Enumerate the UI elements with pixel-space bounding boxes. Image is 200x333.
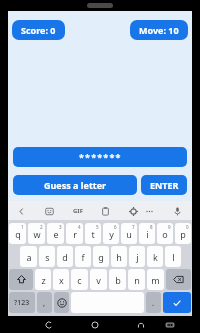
staticText: q <box>15 228 21 240</box>
staticText: 5 <box>96 224 99 230</box>
button[interactable]: x <box>53 269 69 290</box>
staticText: 0 <box>186 224 189 230</box>
button[interactable]: g <box>93 246 109 267</box>
staticText: 8 <box>150 224 153 230</box>
button[interactable]: e <box>47 223 64 244</box>
button[interactable]: Emoji <box>54 292 69 313</box>
button[interactable]: q <box>9 223 26 244</box>
button[interactable]: , <box>37 292 52 313</box>
button[interactable]: d <box>57 246 73 267</box>
button[interactable]: GIF <box>70 204 86 218</box>
button[interactable]: b <box>109 269 126 290</box>
staticText: 1 <box>21 224 24 230</box>
button[interactable]: r <box>66 223 83 244</box>
button[interactable]: Shift <box>9 269 33 290</box>
button[interactable]: o <box>157 223 173 244</box>
button[interactable]: Switch keyboard <box>163 318 177 332</box>
staticText: u <box>126 228 132 240</box>
staticText: f <box>81 251 85 263</box>
button[interactable]: Enter <box>163 292 191 313</box>
staticText: t <box>91 228 95 240</box>
staticText: Score: 0 <box>21 24 56 36</box>
button[interactable]: Voice input <box>170 204 184 218</box>
button[interactable]: f <box>75 246 91 267</box>
staticText: ENTER <box>150 179 179 191</box>
staticText: o <box>162 228 168 240</box>
button[interactable]: Back <box>14 204 28 218</box>
button[interactable]: y <box>103 223 119 244</box>
button[interactable]: ******* <box>13 147 187 167</box>
staticText: 6 <box>114 224 117 230</box>
staticText: 9 <box>168 224 171 230</box>
button[interactable]: Backspace <box>166 269 191 290</box>
staticText: p <box>180 228 186 240</box>
button[interactable]: Guess a letter <box>13 175 137 195</box>
button[interactable]: More options <box>142 204 156 218</box>
button[interactable]: Move: 10 <box>130 20 188 40</box>
button[interactable]: k <box>147 246 163 267</box>
staticText: a <box>26 251 32 263</box>
button[interactable]: a <box>20 246 37 267</box>
staticText: Move: 10 <box>139 24 179 36</box>
button[interactable]: v <box>90 269 107 290</box>
button[interactable]: . <box>146 292 161 313</box>
button[interactable]: Stickers <box>42 204 56 218</box>
staticText: x <box>59 274 64 286</box>
button[interactable]: Home <box>87 317 103 333</box>
staticText: b <box>115 274 121 286</box>
button[interactable]: Score: 0 <box>12 20 65 40</box>
button[interactable]: ENTER <box>141 175 187 195</box>
button[interactable]: l <box>165 246 181 267</box>
button[interactable]: n <box>128 269 145 290</box>
staticText: g <box>98 251 104 263</box>
button[interactable]: p <box>175 223 191 244</box>
button[interactable]: Recent apps <box>133 317 149 333</box>
staticText: 4 <box>78 224 81 230</box>
staticText: h <box>116 251 122 263</box>
button[interactable]: u <box>121 223 137 244</box>
staticText: n <box>134 274 140 286</box>
staticText: z <box>41 274 46 286</box>
staticText: ******* <box>79 151 122 163</box>
button[interactable]: z <box>35 269 51 290</box>
staticText: i <box>146 228 149 240</box>
staticText: . <box>152 297 155 308</box>
staticText: w <box>33 228 41 240</box>
button[interactable]: c <box>71 269 88 290</box>
staticText: e <box>53 228 59 240</box>
staticText: k <box>153 251 158 263</box>
button[interactable]: i <box>139 223 155 244</box>
staticText: s <box>45 251 50 263</box>
button[interactable]: Clipboard <box>98 204 112 218</box>
staticText: Guess a letter <box>44 179 107 191</box>
button[interactable]: j <box>129 246 145 267</box>
button[interactable]: Back <box>41 317 57 333</box>
button[interactable]: s <box>39 246 55 267</box>
button[interactable]: h <box>111 246 127 267</box>
staticText: 7 <box>132 224 135 230</box>
staticText: j <box>136 251 139 263</box>
staticText: 2 <box>40 224 43 230</box>
staticText: , <box>43 297 46 308</box>
staticText: ?123 <box>14 298 30 308</box>
button[interactable]: Settings <box>126 204 140 218</box>
staticText: d <box>62 251 68 263</box>
button[interactable]: w <box>28 223 45 244</box>
staticText: 3 <box>59 224 62 230</box>
staticText: y <box>109 228 114 240</box>
staticText: c <box>77 274 82 286</box>
staticText: v <box>96 274 101 286</box>
staticText: r <box>73 228 77 240</box>
button[interactable]: ?123 <box>9 292 35 313</box>
button[interactable]: t <box>85 223 101 244</box>
staticText: m <box>151 274 160 286</box>
button[interactable]: m <box>147 269 164 290</box>
staticText: l <box>172 251 175 263</box>
staticText: GIF <box>73 207 83 215</box>
